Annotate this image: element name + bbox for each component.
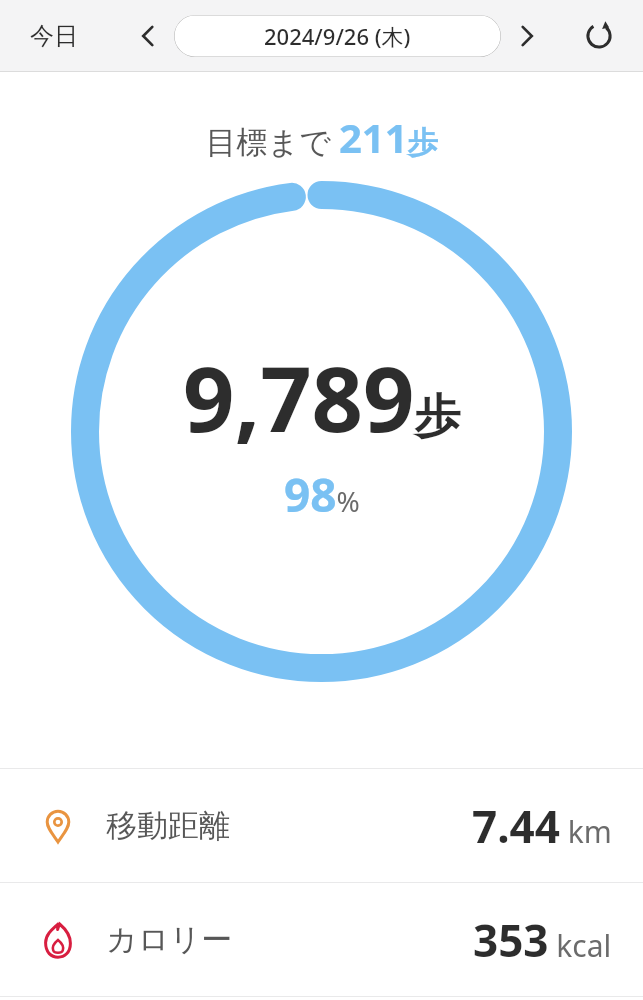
staticText: カロリー bbox=[106, 920, 233, 959]
other: Calories bbox=[36, 918, 80, 962]
button[interactable]: Refresh bbox=[577, 14, 621, 58]
staticText: 移動距離 bbox=[106, 806, 230, 845]
staticText: 98% bbox=[284, 463, 360, 526]
button[interactable]: Previous day bbox=[128, 16, 168, 56]
button[interactable]: 今日 bbox=[22, 15, 86, 57]
staticText: 2024/9/26 (木) bbox=[264, 21, 411, 51]
button[interactable]: 2024/9/26 (木) bbox=[174, 15, 501, 57]
staticText: 目標まで 211歩 bbox=[205, 110, 438, 164]
staticText: 7.44 km bbox=[472, 796, 612, 856]
button[interactable]: Distance bbox=[0, 769, 643, 882]
staticText: 今日 bbox=[30, 21, 78, 51]
button[interactable]: Next day bbox=[507, 16, 547, 56]
button[interactable]: Calories bbox=[0, 883, 643, 996]
staticText: 9,789歩 bbox=[183, 336, 461, 459]
other: Distance bbox=[36, 804, 80, 848]
staticText: 353 kcal bbox=[473, 910, 612, 970]
